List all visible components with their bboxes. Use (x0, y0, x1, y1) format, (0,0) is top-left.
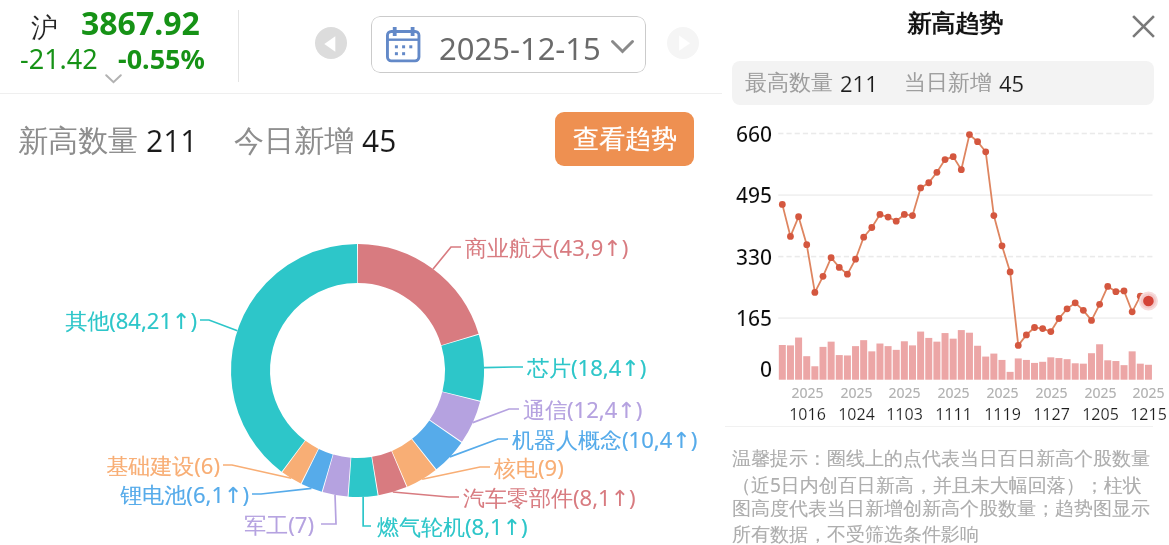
staticText: 今日新增 (234, 122, 354, 160)
staticText: 沪 (31, 11, 58, 45)
staticText: 其他(84,21↑) (65, 305, 197, 335)
staticText: 45 (362, 120, 397, 161)
staticText: 新高数量 (18, 122, 138, 160)
staticText: 211 (840, 68, 878, 98)
staticText: （近5日内创百日新高，并且未大幅回落）；柱状 (732, 472, 1142, 498)
staticText: 燃气轮机(8,1↑) (377, 511, 528, 541)
staticText: 1016 (789, 403, 826, 425)
staticText: 2025 (937, 383, 970, 402)
staticText: 通信(12,4↑) (523, 394, 643, 424)
staticText: 图高度代表当日新增创新高个股数量；趋势图显示 (732, 497, 1150, 521)
staticText: 1215 (1130, 403, 1167, 425)
staticText: 最高数量 (745, 69, 833, 97)
staticText: -21.42 (20, 40, 98, 77)
staticText: 1024 (838, 403, 875, 425)
staticText: 锂电池(6,1↑) (120, 479, 249, 509)
staticText: 3867.92 (81, 1, 200, 45)
button[interactable]: 沪 (0, 0, 222, 93)
staticText: 660 (735, 120, 772, 149)
staticText: 商业航天(43,9↑) (465, 232, 629, 262)
staticText: 1205 (1082, 403, 1119, 425)
staticText: 2025 (1035, 383, 1068, 402)
staticText: 当日新增 (904, 69, 992, 97)
button[interactable]: Close (1126, 9, 1160, 43)
staticText: 2025 (1084, 383, 1117, 402)
staticText: 45 (999, 68, 1025, 98)
staticText: 查看趋势 (573, 123, 677, 156)
staticText: 军工(7) (244, 509, 314, 539)
staticText: 机器人概念(10,4↑) (512, 424, 698, 454)
staticText: 新高趋势 (907, 9, 1003, 39)
staticText: 2025 (1132, 383, 1165, 402)
button[interactable]: 最高数量 (732, 61, 1154, 105)
staticText: 2025 (986, 383, 1019, 402)
staticText: 1103 (886, 403, 923, 425)
staticText: 基础建设(6) (106, 450, 220, 480)
button[interactable]: 查看趋势 (555, 112, 694, 166)
staticText: 2025 (888, 383, 921, 402)
staticText: 2025-12-15 (439, 27, 601, 69)
staticText: 165 (735, 304, 772, 333)
staticText: 495 (735, 181, 772, 210)
staticText: 2025 (840, 383, 873, 402)
staticText: 汽车零部件(8,1↑) (463, 482, 636, 512)
staticText: 330 (735, 243, 772, 272)
staticText: 1119 (984, 403, 1021, 425)
staticText: 温馨提示：圈线上的点代表当日百日新高个股数量 (732, 447, 1150, 471)
staticText: -0.55% (118, 40, 205, 77)
button[interactable]: Previous day (315, 27, 347, 59)
staticText: 2025 (791, 383, 824, 402)
staticText: 1111 (935, 403, 972, 425)
staticText: 1127 (1033, 403, 1070, 425)
button[interactable]: 2025-12-15 (371, 16, 646, 73)
staticText: 核电(9) (494, 452, 564, 482)
staticText: 芯片(18,4↑) (527, 352, 647, 382)
staticText: 0 (759, 355, 772, 384)
staticText: 所有数据，不受筛选条件影响 (732, 523, 979, 545)
staticText: 211 (146, 120, 198, 161)
button[interactable]: Next day (667, 27, 699, 59)
